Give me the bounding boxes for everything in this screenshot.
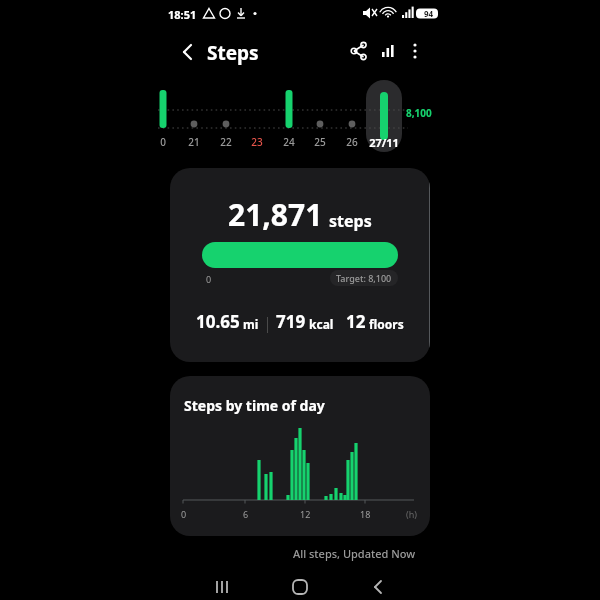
staticText: 24 [283,135,295,149]
staticText: 0 [206,273,212,285]
staticText: 18 [360,508,371,520]
staticText: steps [329,210,372,232]
staticText: floors [369,316,404,332]
staticText: 21,871 [228,194,323,235]
staticText: kcal [309,316,334,332]
button[interactable]: 24 [278,134,300,150]
staticText: 10.65 [196,310,240,333]
button[interactable]: Back [172,36,204,68]
button[interactable]: 26 [341,134,363,150]
button[interactable]: Recent apps [206,572,238,600]
staticText: 18:51 [168,7,197,22]
staticText: 719 [276,310,306,333]
staticText: Steps by time of day [184,396,325,415]
staticText: 6 [243,508,249,520]
staticText: mi [243,316,259,332]
staticText: 26 [346,135,358,149]
staticText: 12 [300,508,311,520]
staticText: 12 [346,310,366,333]
button[interactable]: More options [400,36,430,66]
staticText: 25 [314,135,326,149]
button[interactable]: Home [284,572,316,600]
button[interactable]: 23 [246,134,268,150]
button[interactable] [366,80,402,152]
staticText: Target: 8,100 [336,272,392,284]
button[interactable]: Steps by time of day [170,376,430,536]
button[interactable]: Chart [373,36,403,66]
staticText: 0 [181,508,187,520]
button[interactable]: 21 [183,134,205,150]
button[interactable]: 0 [152,134,174,150]
staticText: All steps, Updated Now [293,546,416,561]
staticText: Steps [207,40,259,66]
staticText: 8,100 [406,106,432,120]
button[interactable]: 22 [215,134,237,150]
staticText: 94 [424,8,434,19]
button[interactable]: 27/11 [367,134,401,150]
staticText: 21 [188,135,200,149]
button[interactable]: 25 [309,134,331,150]
staticText: 27/11 [369,135,399,150]
staticText: 22 [220,135,232,149]
button[interactable]: Back [362,572,394,600]
button[interactable]: Share [344,36,374,66]
button[interactable]: 21,871 [170,168,430,362]
staticText: 23 [251,135,263,149]
staticText: 0 [160,135,166,149]
staticText: (h) [406,508,417,520]
